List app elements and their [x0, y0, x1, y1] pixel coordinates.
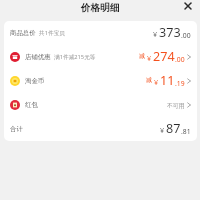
staticText: ¥ [153, 29, 158, 39]
staticText: 减 [146, 76, 153, 84]
button[interactable]: 店铺优惠 [4, 45, 197, 69]
staticText: 274 [153, 48, 175, 65]
staticText: 店铺优惠 [25, 53, 51, 61]
staticText: ¥ [147, 53, 152, 63]
staticText: 满1件减215元等 [54, 53, 96, 61]
staticText: ¥ [160, 125, 165, 135]
staticText: ¥ [154, 77, 159, 87]
staticText: 不可用 [167, 102, 185, 109]
staticText: 87 [166, 120, 181, 137]
staticText: 共1件宝贝 [39, 29, 66, 37]
staticText: 价格明细 [81, 2, 120, 14]
staticText: .00 [175, 55, 185, 64]
staticText: 11 [160, 72, 175, 89]
button[interactable]: 红包 [4, 93, 197, 117]
staticText: .00 [181, 31, 191, 40]
button[interactable]: 淘金币 [4, 69, 197, 93]
staticText: 商品总价 [10, 29, 36, 37]
staticText: .19 [175, 79, 185, 88]
button[interactable]: Close [182, 0, 194, 12]
staticText: 红包 [25, 101, 38, 109]
staticText: 合计 [10, 125, 23, 133]
staticText: .81 [181, 127, 191, 136]
staticText: 373 [159, 24, 181, 41]
staticText: 减 [139, 52, 146, 60]
staticText: 淘金币 [25, 77, 45, 85]
